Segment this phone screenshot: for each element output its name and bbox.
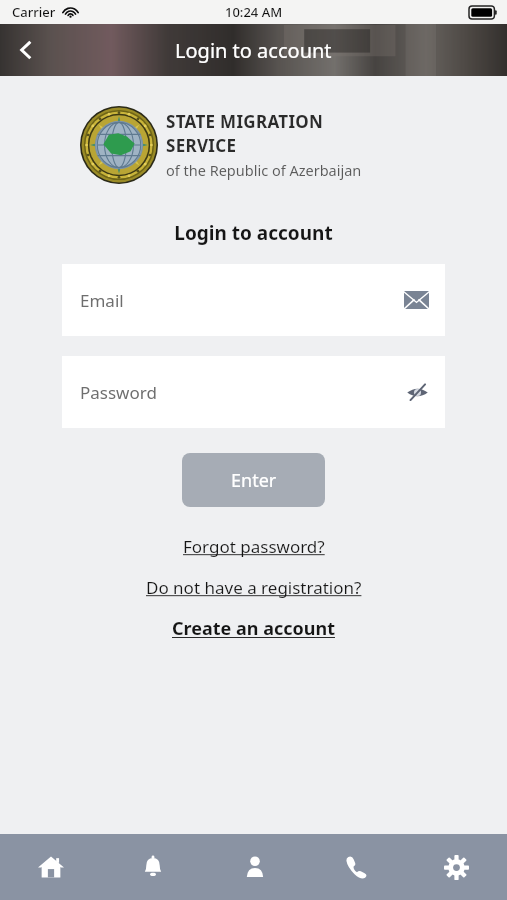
staticText: Email [80, 289, 124, 312]
staticText: Login to account [0, 220, 507, 246]
button[interactable]: Notifications [102, 834, 204, 900]
button[interactable]: Back [0, 24, 52, 76]
staticText: Password [80, 381, 157, 404]
button[interactable]: Call [305, 834, 406, 900]
button[interactable]: Profile [204, 834, 305, 900]
button[interactable]: Email input [62, 264, 445, 336]
staticText: Login to account [175, 37, 332, 64]
staticText: Forgot password? [183, 535, 325, 558]
button[interactable]: Settings [406, 834, 507, 900]
button[interactable]: Create an account [164, 612, 343, 645]
staticText: Do not have a registration? [146, 576, 362, 599]
staticText: STATE MIGRATION [166, 110, 324, 133]
staticText: 10:24 AM [225, 3, 283, 21]
staticText: Enter [231, 468, 277, 493]
staticText: of the Republic of Azerbaijan [166, 160, 362, 180]
staticText: SERVICE [166, 134, 237, 157]
button[interactable]: Home [0, 834, 102, 900]
staticText: Carrier [12, 3, 56, 21]
staticText: Create an account [172, 616, 335, 641]
button[interactable]: Do not have a registration? [138, 572, 370, 603]
button[interactable]: Enter [182, 453, 325, 507]
button[interactable]: Forgot password? [175, 531, 333, 562]
button[interactable]: Password input [62, 356, 445, 428]
